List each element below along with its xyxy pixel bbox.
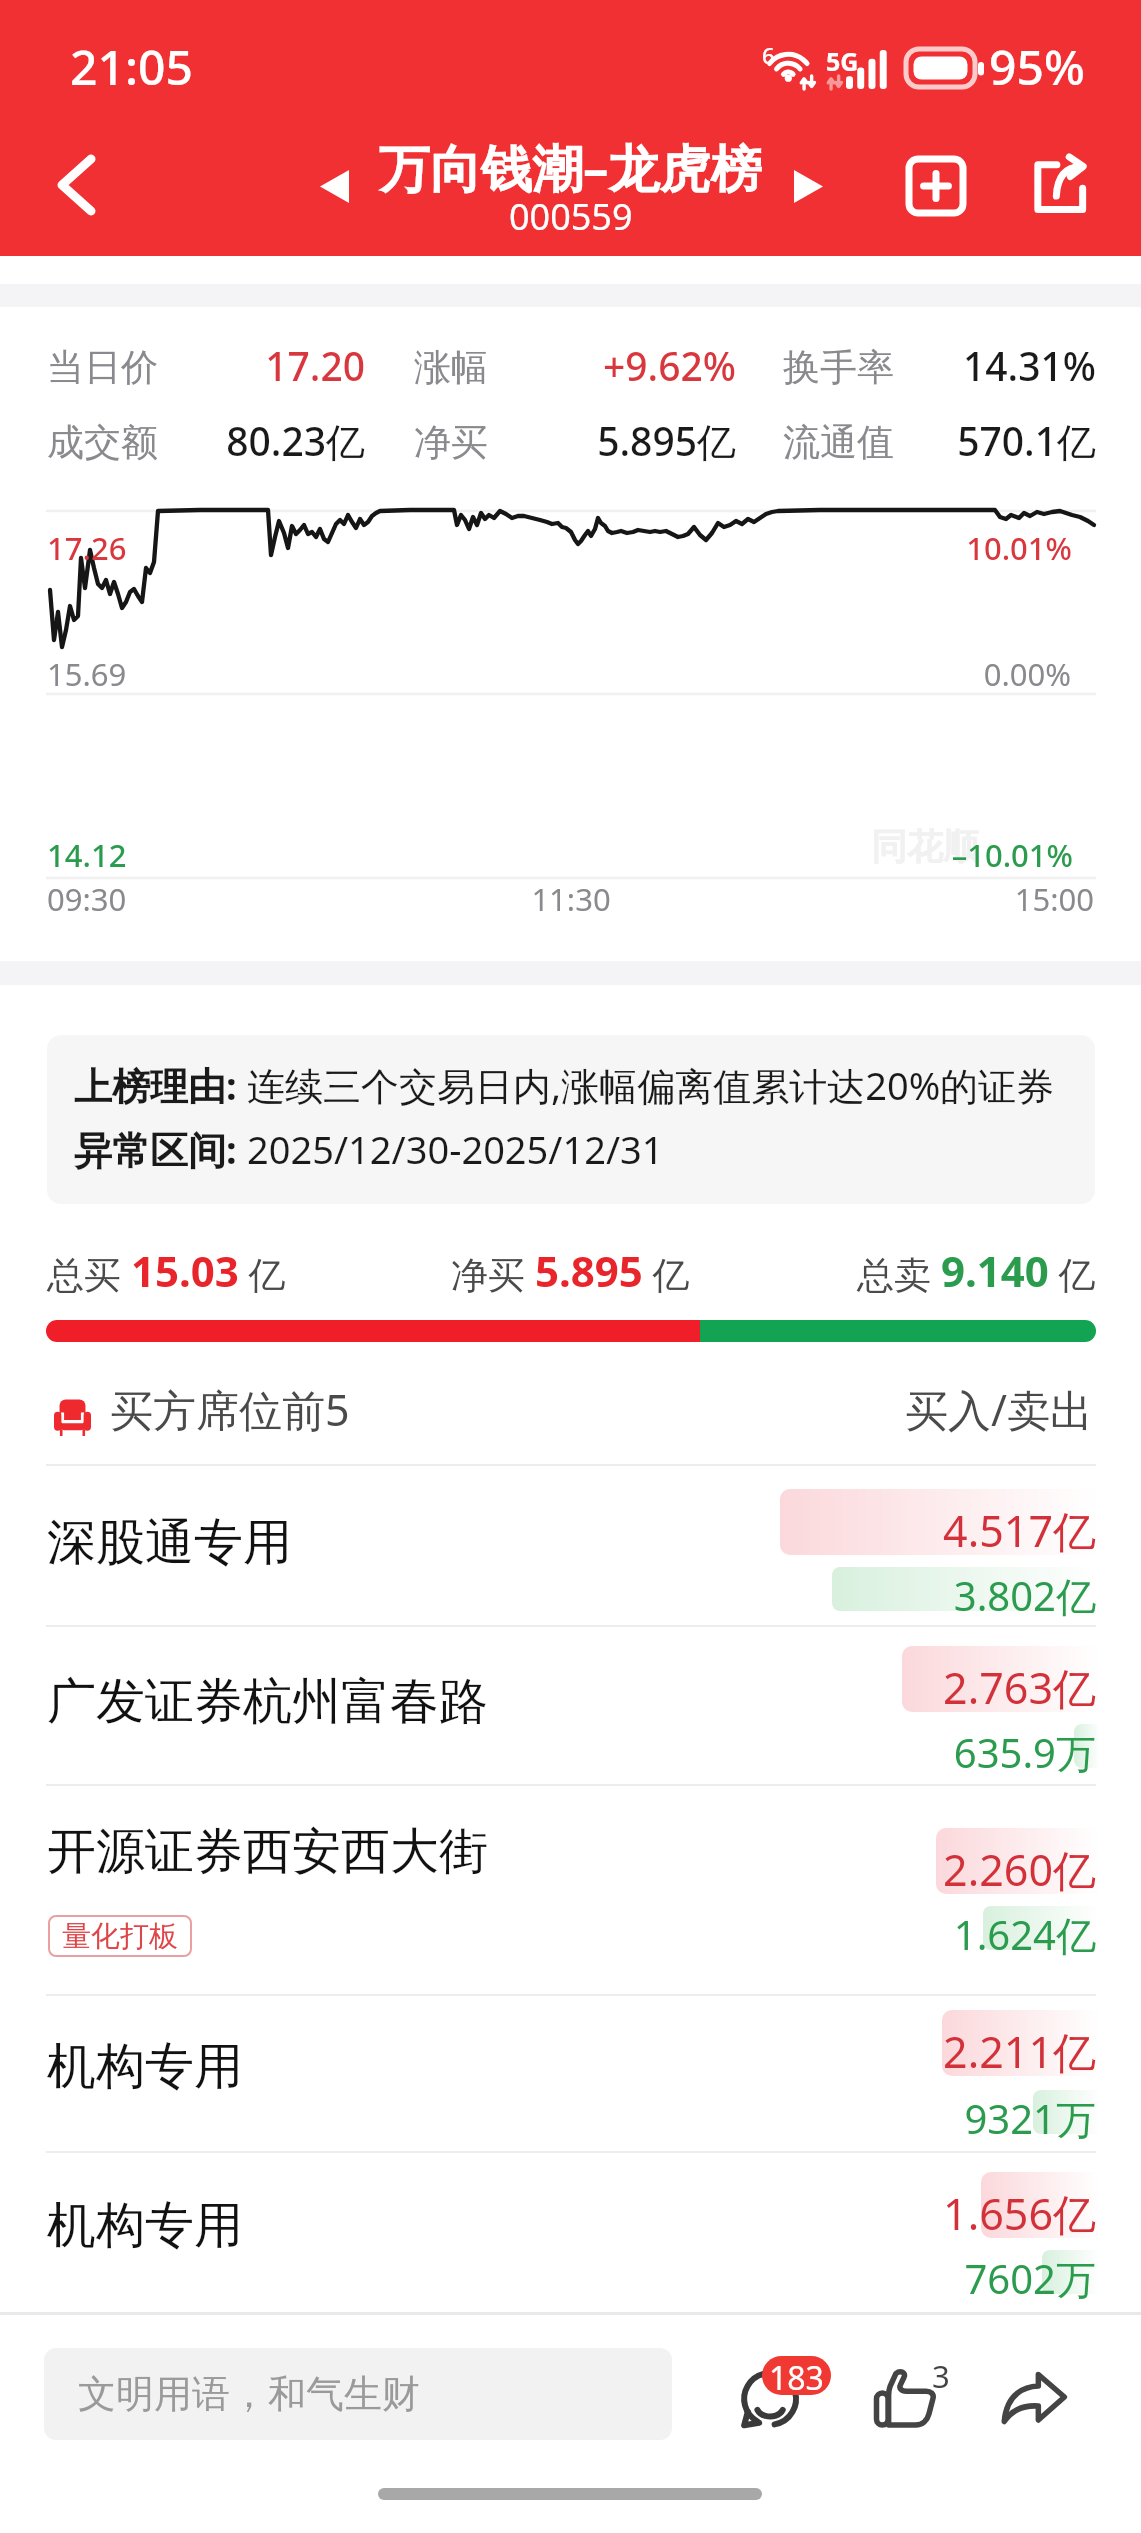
button[interactable]: Back [21,130,131,240]
staticText: 000559 [509,192,633,241]
staticText: 广发证券杭州富春路 [47,1671,488,1733]
staticText: 亿 [1049,1248,1096,1299]
staticText: 量化打板 [62,1918,178,1955]
staticText: 5G [826,44,859,78]
staticText: 3.802亿 [636,1568,1096,1623]
staticText: 同花顺 [871,824,979,869]
staticText: 9.140 [941,1242,1049,1299]
staticText: 连续三个交易日内,涨幅偏离值累计达20%的证券 [247,1059,1055,1111]
staticText: 10.01% [612,527,1072,569]
staticText: –10.01% [613,834,1073,876]
staticText: 2.211亿 [636,2022,1096,2081]
staticText: 亿 [643,1248,690,1299]
staticText: 15.69 [47,653,127,695]
staticText: 95% [989,34,1085,99]
button[interactable] [0,1995,1141,2151]
staticText: 14.12 [47,834,127,876]
button[interactable]: Like [858,2348,978,2440]
staticText: 2025/12/30-2025/12/31 [247,1123,664,1175]
staticText: 总买 [47,1248,131,1299]
button[interactable]: Comments [728,2348,848,2440]
staticText: 09:30 [47,878,127,920]
staticText: 17.20 [0,339,365,392]
staticText: 570.1亿 [636,414,1096,467]
staticText: 万向钱潮–龙虎榜 [379,132,762,202]
staticText: 9321万 [636,2091,1096,2146]
staticText: 开源证券西安西大街 [47,1821,488,1883]
button[interactable] [0,1465,1141,1625]
staticText: 183 [769,2356,824,2395]
staticText: 21:05 [70,34,193,99]
staticText: 6 [762,40,775,70]
staticText: 总卖 [857,1248,941,1299]
staticText: 换手率 [783,344,894,391]
staticText: 2.763亿 [636,1658,1096,1717]
button[interactable]: Previous stock [294,146,374,226]
staticText: 涨幅 [414,344,488,391]
staticText: 1.656亿 [636,2184,1096,2243]
staticText: 流通值 [783,419,894,466]
staticText: 15:00 [634,878,1094,920]
staticText: 买方席位前5 [110,1380,350,1439]
staticText: 异常区间: [74,1123,247,1175]
staticText: 成交额 [47,419,158,466]
staticText: 净买 [451,1248,535,1299]
staticText: 机构专用 [47,2195,243,2257]
staticText: 4.517亿 [636,1501,1096,1560]
button[interactable] [0,2152,1141,2312]
button[interactable]: Add to watchlist [890,140,982,232]
staticText: 机构专用 [47,2036,243,2098]
staticText: 上榜理由: [74,1059,247,1111]
staticText: 当日价 [47,344,158,391]
staticText: 深股通专用 [47,1512,292,1574]
button[interactable]: Share [988,2348,1098,2440]
staticText: 5.895 [535,1242,643,1299]
staticText: 3 [932,2355,950,2397]
staticText: 11:30 [421,878,721,920]
staticText: 2.260亿 [636,1840,1096,1899]
staticText: 80.23亿 [0,414,365,467]
button[interactable]: 文明用语，和气生财 [44,2348,672,2440]
staticText: +9.62% [276,339,736,392]
staticText: 1.624亿 [636,1907,1096,1962]
staticText: 文明用语，和气生财 [78,2370,420,2418]
staticText: 亿 [239,1248,286,1299]
button[interactable]: Next stock [768,146,848,226]
staticText: 0.00% [611,653,1071,695]
staticText: 15.03 [131,1242,239,1299]
button[interactable]: Share [1012,140,1104,232]
staticText: 7602万 [636,2251,1096,2306]
button[interactable] [0,1626,1141,1784]
staticText: 买入/卖出 [633,1380,1093,1439]
staticText: 635.9万 [636,1725,1096,1780]
staticText: 17.26 [47,527,127,569]
staticText: 净买 [414,419,488,466]
staticText: 14.31% [636,339,1096,392]
button[interactable] [0,1785,1141,1994]
staticText: 5.895亿 [276,414,736,467]
